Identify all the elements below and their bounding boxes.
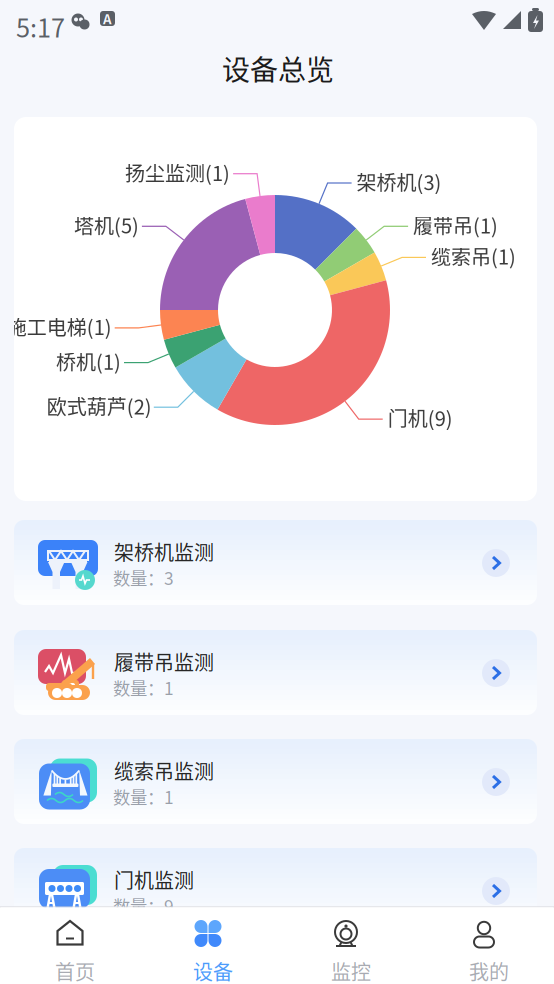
staticText: 数量：1 [113, 784, 174, 809]
button[interactable]: 首页 [1, 907, 139, 984]
staticText: 门机监测 [114, 865, 194, 894]
staticText: 架桥机监测 [114, 537, 214, 566]
staticText: 5:17 [16, 8, 65, 45]
button[interactable]: 我的 [415, 907, 553, 984]
button[interactable]: 缆索吊监测 [14, 739, 537, 824]
staticText: 桥机(1) [56, 347, 121, 376]
staticText: 缆索吊监测 [114, 756, 214, 785]
button[interactable]: 履带吊监测 [14, 630, 537, 715]
staticText: 履带吊(1) [413, 210, 498, 239]
staticText: 数量：1 [113, 675, 174, 700]
staticText: 履带吊监测 [114, 647, 214, 676]
staticText: 塔机(5) [74, 210, 139, 239]
staticText: 扬尘监测(1) [125, 158, 230, 187]
staticText: 监控 [331, 956, 371, 984]
button[interactable]: 监控 [277, 907, 415, 984]
staticText: A [103, 9, 112, 28]
staticText: 架桥机(3) [357, 167, 442, 196]
staticText: 设备 [193, 956, 233, 984]
button[interactable]: 架桥机监测 [14, 520, 537, 605]
staticText: 门机(9) [388, 403, 453, 432]
staticText: 数量：9 [113, 893, 174, 918]
button[interactable]: 设备 [139, 907, 277, 984]
staticText: 我的 [469, 956, 509, 984]
staticText: 施工电梯(1) [7, 312, 112, 341]
button[interactable]: 门机监测 [14, 848, 537, 933]
staticText: 数量：3 [113, 565, 174, 590]
staticText: 设备总览 [222, 48, 334, 88]
staticText: 欧式葫芦(2) [47, 391, 152, 420]
staticText: 缆索吊(1) [431, 241, 516, 270]
staticText: 首页 [55, 956, 95, 984]
